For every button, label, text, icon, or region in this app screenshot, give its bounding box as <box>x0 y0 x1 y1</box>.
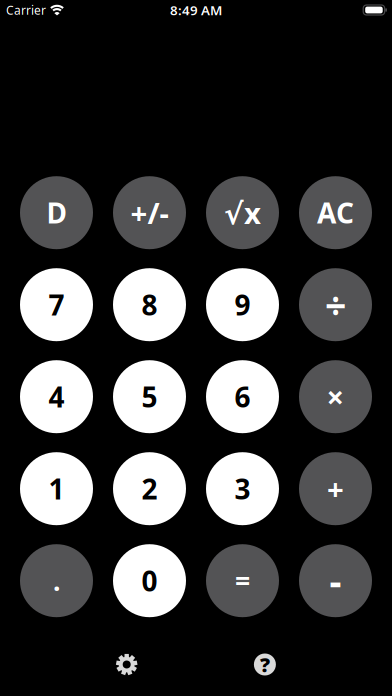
button[interactable]: = <box>206 544 279 617</box>
staticText: 2 <box>141 470 157 507</box>
button[interactable]: 9 <box>206 268 279 341</box>
button[interactable]: 2 <box>113 452 186 525</box>
button[interactable]: ÷ <box>299 268 372 341</box>
staticText: AC <box>317 194 354 231</box>
button[interactable]: 7 <box>20 268 93 341</box>
staticText: = <box>235 563 250 598</box>
staticText: 7 <box>48 286 64 323</box>
button[interactable]: 0 <box>113 544 186 617</box>
button[interactable]: +/- <box>113 176 186 249</box>
button[interactable]: . <box>20 544 93 617</box>
button[interactable]: 4 <box>20 360 93 433</box>
button[interactable]: AC <box>299 176 372 249</box>
staticText: 9 <box>234 286 250 323</box>
button[interactable]: 8 <box>113 268 186 341</box>
staticText: Carrier <box>6 2 46 18</box>
staticText: 1 <box>48 470 64 507</box>
button[interactable]: 1 <box>20 452 93 525</box>
staticText: ? <box>260 651 270 678</box>
staticText: 8 <box>141 286 157 323</box>
button[interactable]: - <box>299 544 372 617</box>
staticText: 3 <box>234 470 250 507</box>
button[interactable]: √x <box>206 176 279 249</box>
staticText: 0 <box>141 562 157 599</box>
staticText: 4 <box>48 378 64 415</box>
staticText: 6 <box>234 378 250 415</box>
staticText: ÷ <box>325 280 346 329</box>
staticText: - <box>329 556 341 605</box>
staticText: +/- <box>130 193 168 232</box>
staticText: 5 <box>141 378 157 415</box>
staticText: + <box>327 469 344 508</box>
button[interactable]: Settings <box>112 649 142 679</box>
button[interactable]: 6 <box>206 360 279 433</box>
staticText: 8:49 AM <box>170 1 222 19</box>
button[interactable]: + <box>299 452 372 525</box>
staticText: × <box>326 376 344 417</box>
staticText: . <box>53 563 60 598</box>
staticText: D <box>46 194 66 231</box>
button[interactable]: × <box>299 360 372 433</box>
button[interactable]: 5 <box>113 360 186 433</box>
staticText: √x <box>224 193 261 232</box>
button[interactable]: 3 <box>206 452 279 525</box>
button[interactable]: Help <box>250 649 280 679</box>
button[interactable]: D <box>20 176 93 249</box>
